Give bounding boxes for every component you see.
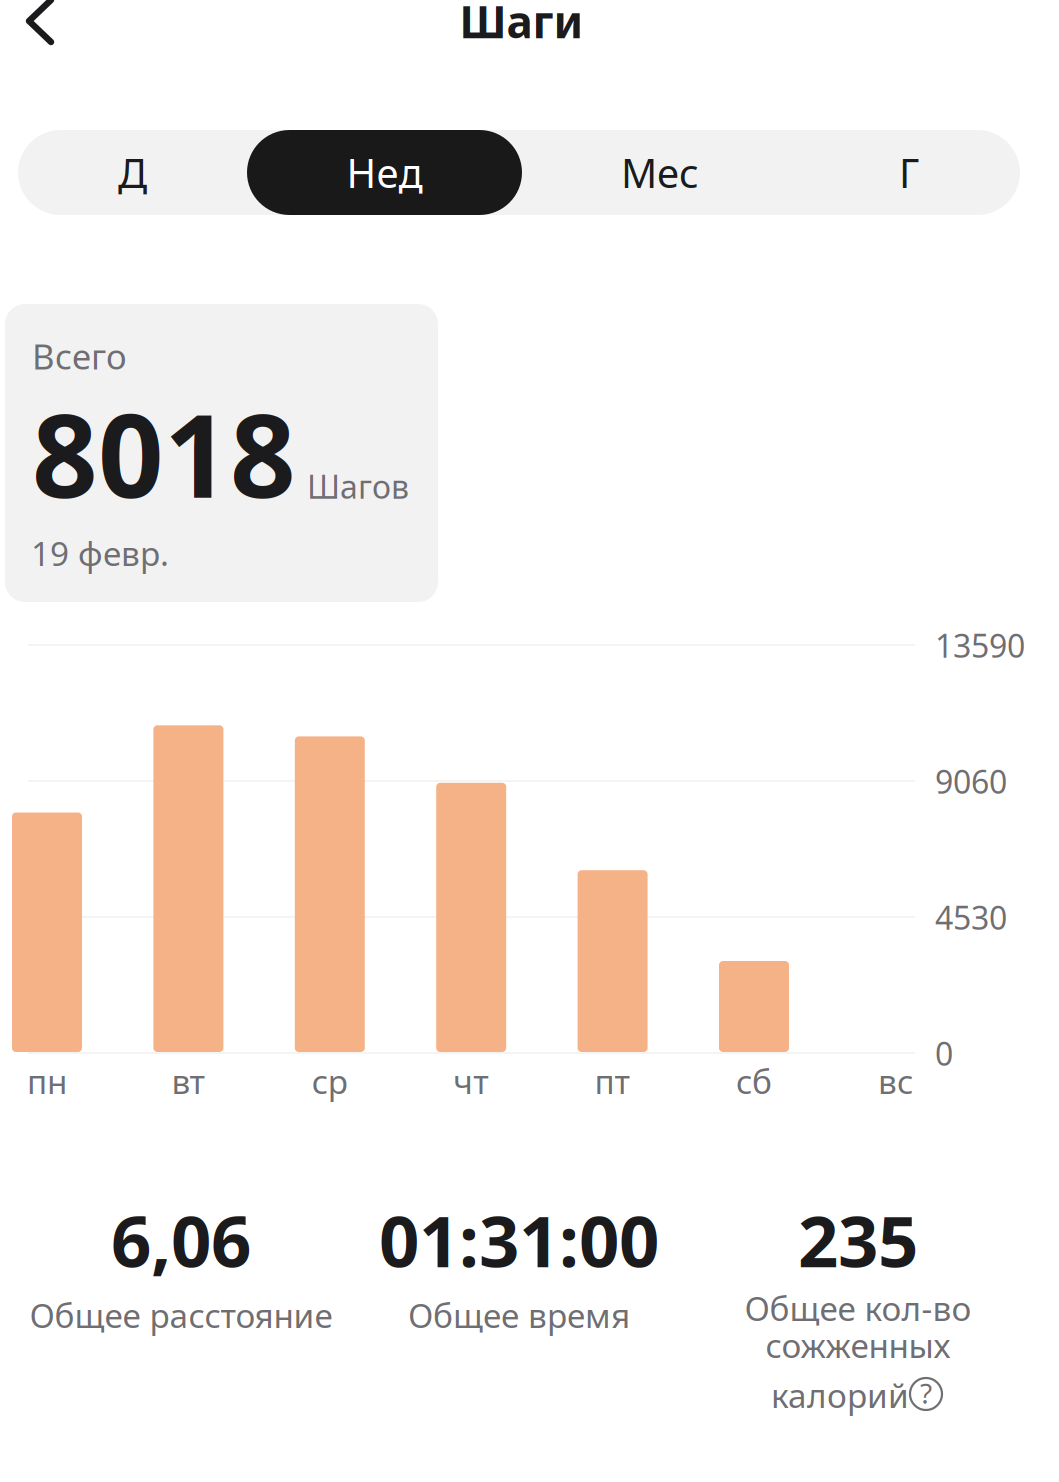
staticText: Г [899,146,919,199]
staticText: 9060 [935,760,1007,802]
staticText: Шагов [307,465,409,507]
staticText: 8018 [32,377,296,529]
staticText: чт [453,1059,489,1103]
staticText: Шаги [459,0,583,50]
staticText: вт [171,1059,205,1103]
button[interactable]: Назад [0,0,85,57]
staticText: сб [736,1059,772,1103]
staticText: 19 февр. [31,531,169,575]
button[interactable]: Нед [247,130,522,215]
staticText: Мес [621,146,699,199]
staticText: 01:31:00 [379,1193,659,1287]
staticText: сожженных [765,1323,950,1367]
staticText: 13590 [935,624,1025,666]
staticText: 235 [798,1193,918,1287]
button[interactable]: Шаги [0,0,1043,58]
button[interactable]: Подробнее о калориях [0,0,34,34]
button[interactable]: Г [798,130,1020,215]
staticText: Всего [32,333,127,379]
staticText: Нед [346,146,422,199]
staticText: ? [920,1374,932,1412]
staticText: калорий [771,1373,909,1417]
staticText: Общее время [408,1293,630,1337]
staticText: ср [312,1059,348,1103]
staticText: вс [878,1059,913,1103]
button[interactable]: Д [18,130,247,215]
staticText: Общее расстояние [29,1293,332,1337]
staticText: 4530 [935,896,1007,938]
staticText: 6,06 [111,1193,251,1287]
button[interactable]: Мес [522,130,798,215]
staticText: Общее кол-во [744,1286,971,1330]
staticText: пт [595,1059,631,1103]
staticText: Д [118,146,147,199]
staticText: пн [27,1059,67,1103]
staticText: 0 [935,1032,953,1074]
